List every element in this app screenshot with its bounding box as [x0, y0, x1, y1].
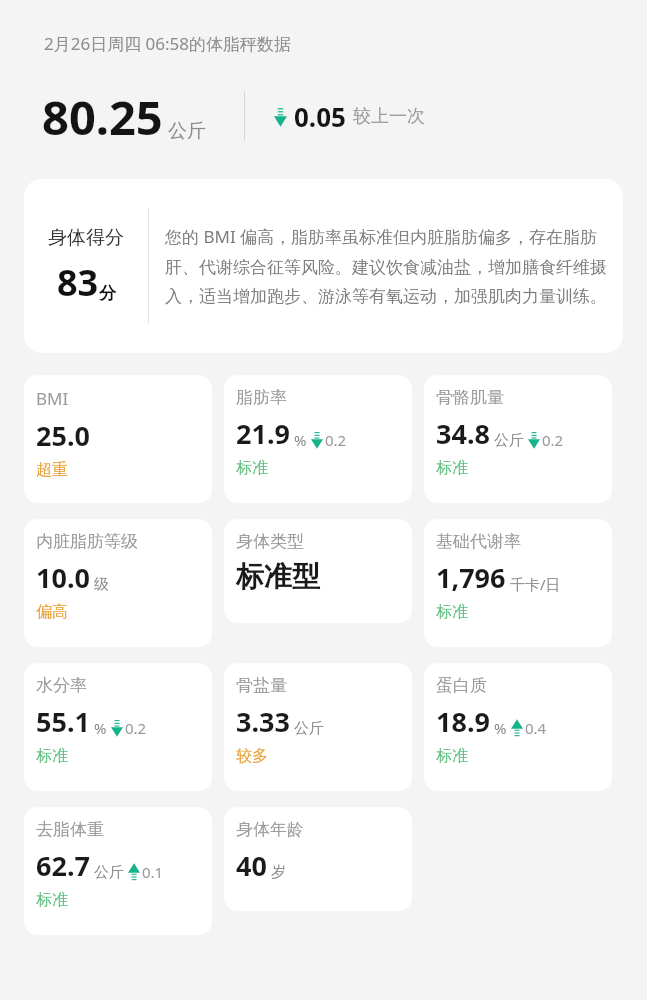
staticText: 身体得分 — [48, 226, 124, 250]
staticText: 25.0 — [36, 417, 90, 454]
staticText: 分 — [99, 283, 116, 304]
staticText: 34.8 — [436, 415, 490, 452]
staticText: 公斤 — [94, 863, 124, 882]
button[interactable]: 骨盐量 — [224, 663, 412, 791]
staticText: 较多 — [236, 746, 268, 766]
staticText: 18.9 — [436, 703, 490, 740]
staticText: 级 — [94, 575, 109, 594]
staticText: 55.1 — [36, 703, 90, 740]
staticText: 标准 — [436, 746, 468, 766]
staticText: 标准 — [236, 458, 268, 478]
staticText: 骨盐量 — [236, 675, 287, 696]
button[interactable]: 身体年龄 — [224, 807, 412, 911]
button[interactable]: 身体类型 — [224, 519, 412, 623]
button[interactable]: 骨骼肌量 — [424, 375, 612, 503]
staticText: 0.2 — [542, 430, 564, 450]
staticText: % — [294, 430, 307, 450]
staticText: 0.2 — [125, 718, 147, 738]
staticText: 公斤 — [294, 719, 324, 738]
staticText: 骨骼肌量 — [436, 387, 504, 408]
staticText: 10.0 — [36, 559, 90, 596]
staticText: 80.25 — [42, 85, 163, 147]
staticText: 偏高 — [36, 602, 68, 622]
staticText: BMI — [36, 387, 69, 410]
staticText: 水分率 — [36, 675, 87, 696]
staticText: 基础代谢率 — [436, 531, 521, 552]
staticText: 内脏脂肪等级 — [36, 531, 138, 552]
staticText: 脂肪率 — [236, 387, 287, 408]
staticText: 21.9 — [236, 415, 290, 452]
staticText: % — [494, 718, 507, 738]
button[interactable]: 蛋白质 — [424, 663, 612, 791]
staticText: % — [94, 718, 107, 738]
staticText: 62.7 — [36, 847, 90, 884]
staticText: 0.2 — [325, 430, 347, 450]
button[interactable]: 水分率 — [24, 663, 212, 791]
staticText: 0.4 — [525, 718, 547, 738]
staticText: 身体年龄 — [236, 819, 304, 840]
staticText: 公斤 — [494, 431, 524, 450]
staticText: 标准 — [436, 602, 468, 622]
staticText: 0.05 — [294, 99, 346, 134]
staticText: 2月26日周四 06:58的体脂秤数据 — [44, 32, 292, 55]
staticText: 40 — [236, 847, 267, 884]
button[interactable]: 基础代谢率 — [424, 519, 612, 647]
staticText: 标准型 — [236, 559, 320, 594]
staticText: 去脂体重 — [36, 819, 104, 840]
staticText: 较上一次 — [353, 105, 425, 128]
staticText: 千卡/日 — [510, 574, 561, 594]
staticText: 83 — [57, 258, 99, 307]
staticText: 您的 BMI 偏高，脂肪率虽标准但内脏脂肪偏多，存在脂肪肝、代谢综合征等风险。建… — [165, 225, 609, 307]
button[interactable]: 身体得分 — [24, 179, 623, 353]
button[interactable]: 脂肪率 — [224, 375, 412, 503]
staticText: 0.1 — [142, 862, 164, 882]
staticText: 公斤 — [168, 119, 206, 143]
button[interactable]: 去脂体重 — [24, 807, 212, 935]
button[interactable]: 内脏脂肪等级 — [24, 519, 212, 647]
staticText: 1,796 — [436, 559, 506, 596]
staticText: 标准 — [36, 890, 68, 910]
staticText: 蛋白质 — [436, 675, 487, 696]
staticText: 身体类型 — [236, 531, 304, 552]
staticText: 标准 — [436, 458, 468, 478]
staticText: 3.33 — [236, 703, 290, 740]
staticText: 岁 — [271, 863, 286, 882]
staticText: 标准 — [36, 746, 68, 766]
staticText: 超重 — [36, 460, 68, 480]
button[interactable]: BMI — [24, 375, 212, 503]
